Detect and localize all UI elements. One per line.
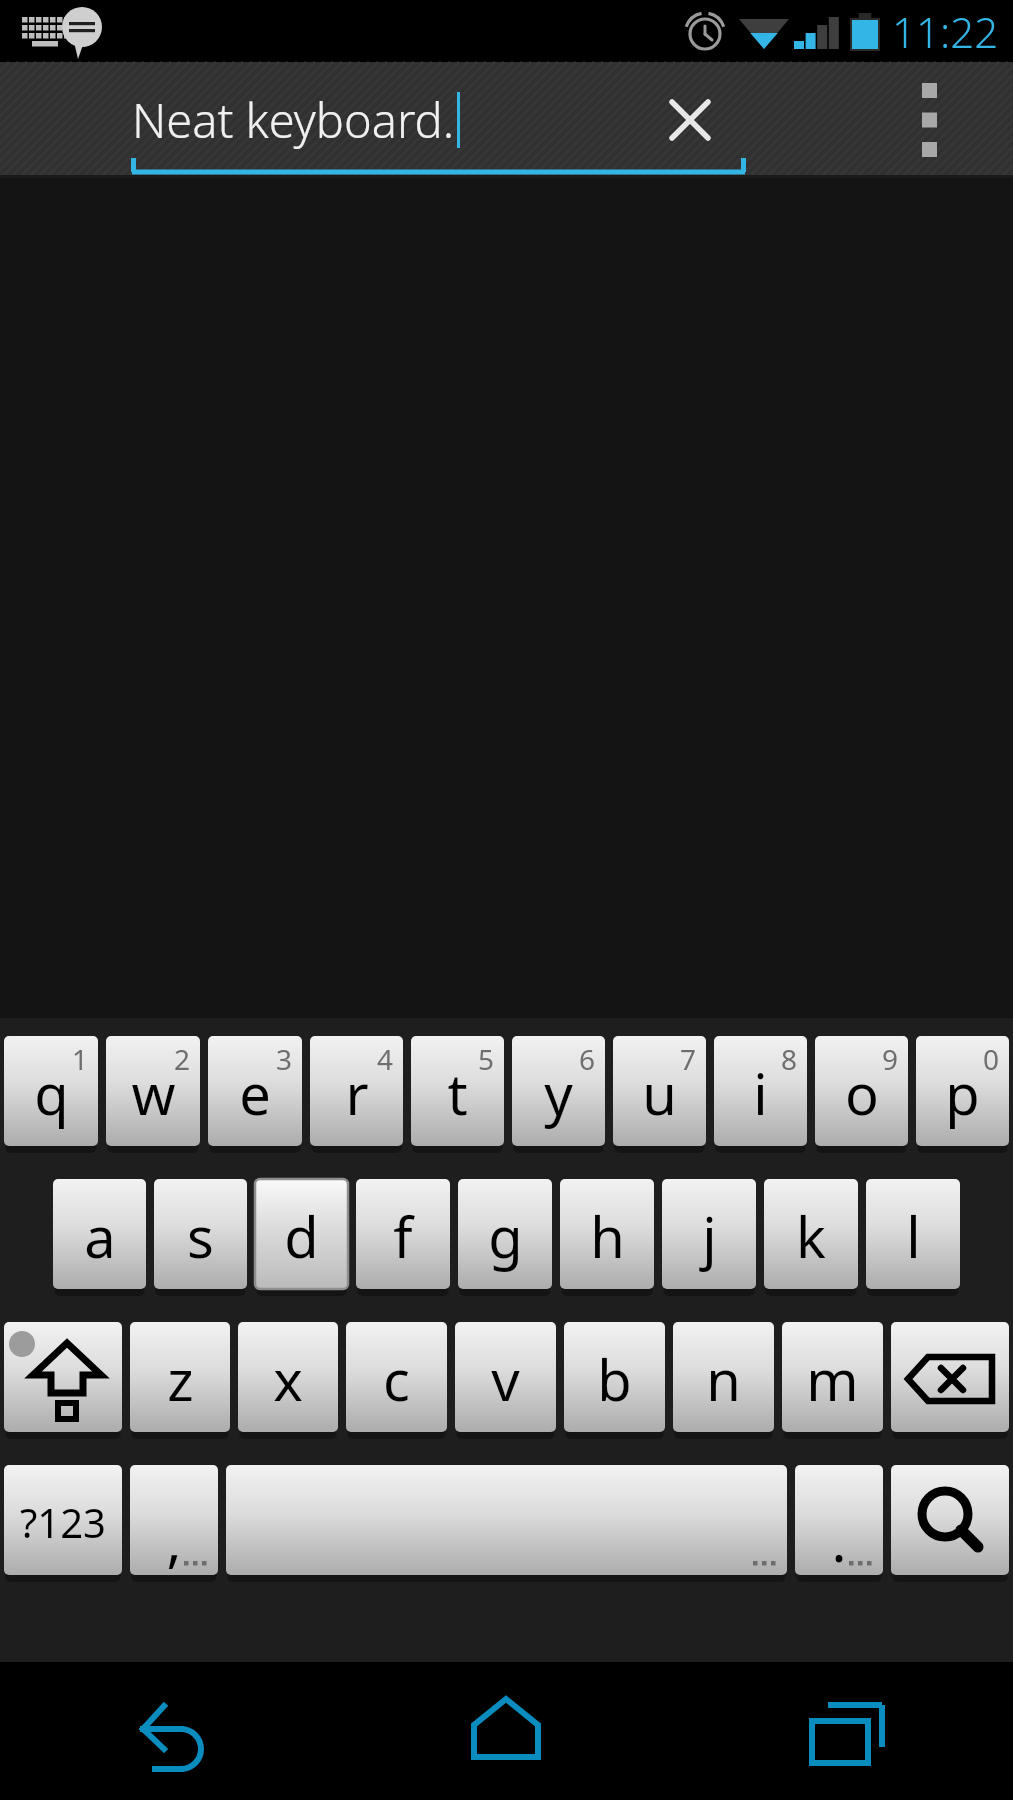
- staticText: n: [706, 1341, 741, 1417]
- staticText: d: [284, 1198, 319, 1274]
- staticText: ,: [166, 1502, 182, 1578]
- button[interactable]: y: [512, 1036, 605, 1150]
- button[interactable]: r: [310, 1036, 403, 1150]
- button[interactable]: Recent apps: [675, 1662, 1013, 1800]
- staticText: r: [345, 1055, 369, 1131]
- staticText: a: [84, 1198, 116, 1274]
- button[interactable]: q: [4, 1036, 98, 1150]
- button[interactable]: n: [673, 1322, 774, 1436]
- staticText: z: [167, 1341, 194, 1417]
- button[interactable]: i: [714, 1036, 807, 1150]
- button[interactable]: Shift: [4, 1322, 122, 1436]
- staticText: 1: [72, 1040, 89, 1078]
- button[interactable]: Backspace: [891, 1322, 1009, 1436]
- staticText: g: [488, 1198, 523, 1274]
- button[interactable]: Clear query: [640, 70, 740, 170]
- staticText: k: [796, 1198, 826, 1274]
- button[interactable]: ,: [130, 1465, 218, 1579]
- button[interactable]: .: [795, 1465, 883, 1579]
- button[interactable]: t: [411, 1036, 504, 1150]
- button[interactable]: p: [916, 1036, 1009, 1150]
- staticText: t: [447, 1055, 468, 1131]
- staticText: j: [702, 1198, 717, 1274]
- staticText: x: [273, 1341, 303, 1417]
- staticText: 3: [276, 1040, 293, 1078]
- staticText: w: [131, 1055, 176, 1131]
- button[interactable]: a: [53, 1179, 146, 1293]
- staticText: e: [239, 1055, 271, 1131]
- button[interactable]: g: [458, 1179, 552, 1293]
- staticText: 0: [983, 1040, 1000, 1078]
- staticText: l: [906, 1198, 921, 1274]
- button[interactable]: k: [764, 1179, 858, 1293]
- staticText: s: [187, 1198, 214, 1274]
- button[interactable]: d: [255, 1179, 348, 1293]
- staticText: y: [544, 1055, 573, 1131]
- staticText: c: [383, 1341, 410, 1417]
- button[interactable]: Search: [891, 1465, 1009, 1579]
- staticText: m: [806, 1341, 859, 1417]
- staticText: ?123: [20, 1495, 106, 1549]
- staticText: p: [945, 1055, 980, 1131]
- staticText: 8: [781, 1040, 798, 1078]
- button[interactable]: Home: [337, 1662, 675, 1800]
- staticText: v: [491, 1341, 520, 1417]
- button[interactable]: z: [130, 1322, 230, 1436]
- staticText: .: [831, 1502, 847, 1578]
- button[interactable]: f: [356, 1179, 450, 1293]
- button[interactable]: j: [662, 1179, 756, 1293]
- staticText: q: [34, 1055, 69, 1131]
- button[interactable]: b: [564, 1322, 665, 1436]
- staticText: 9: [882, 1040, 899, 1078]
- staticText: 2: [174, 1040, 191, 1078]
- button[interactable]: l: [866, 1179, 960, 1293]
- staticText: 7: [680, 1040, 697, 1078]
- staticText: 6: [579, 1040, 596, 1078]
- staticText: u: [642, 1055, 677, 1131]
- button[interactable]: h: [560, 1179, 654, 1293]
- staticText: b: [597, 1341, 632, 1417]
- button[interactable]: ?123: [4, 1465, 122, 1579]
- staticText: h: [590, 1198, 625, 1274]
- staticText: 5: [478, 1040, 495, 1078]
- button[interactable]: v: [455, 1322, 556, 1436]
- button[interactable]: m: [782, 1322, 883, 1436]
- button[interactable]: x: [238, 1322, 338, 1436]
- staticText: 11:22: [892, 3, 999, 60]
- button[interactable]: More options: [887, 65, 973, 175]
- button[interactable]: s: [154, 1179, 247, 1293]
- button[interactable]: Back: [0, 1662, 337, 1800]
- staticText: 4: [377, 1040, 394, 1078]
- staticText: o: [845, 1055, 879, 1131]
- staticText: Neat keyboard.: [132, 88, 455, 152]
- button[interactable]: c: [346, 1322, 447, 1436]
- button[interactable]: u: [613, 1036, 706, 1150]
- staticText: i: [753, 1055, 768, 1131]
- button[interactable]: [226, 1465, 787, 1579]
- button[interactable]: e: [208, 1036, 302, 1150]
- button[interactable]: Neat keyboard.: [132, 88, 460, 152]
- staticText: f: [393, 1198, 413, 1274]
- button[interactable]: w: [106, 1036, 200, 1150]
- button[interactable]: o: [815, 1036, 908, 1150]
